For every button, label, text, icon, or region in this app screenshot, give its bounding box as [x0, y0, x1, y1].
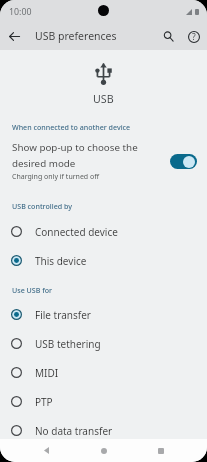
button[interactable]: No data transfer: [0, 416, 207, 445]
button[interactable]: MIDI: [0, 358, 207, 387]
staticText: 10:00: [9, 6, 32, 18]
button[interactable]: USB tethering: [0, 329, 207, 358]
staticText: Use USB for: [12, 285, 53, 295]
button[interactable]: Back: [34, 439, 58, 462]
button[interactable]: Home: [92, 439, 116, 462]
staticText: Connected device: [35, 225, 118, 239]
button[interactable]: Show pop-up to choose the desired mode: [0, 141, 207, 182]
staticText: ?: [192, 31, 196, 43]
button[interactable]: Recent apps: [149, 439, 173, 462]
staticText: PTP: [35, 395, 53, 409]
staticText: USB preferences: [35, 29, 117, 43]
staticText: File transfer: [35, 308, 91, 322]
staticText: MIDI: [35, 366, 59, 380]
staticText: USB: [93, 92, 114, 107]
button[interactable]: Help: [181, 24, 206, 49]
staticText: USB controlled by: [12, 201, 72, 211]
button[interactable]: Back: [2, 24, 27, 49]
button[interactable]: This device: [0, 246, 207, 275]
staticText: This device: [35, 254, 87, 268]
button[interactable]: PTP: [0, 387, 207, 416]
staticText: USB tethering: [35, 337, 101, 351]
staticText: Show pop-up to choose the desired mode: [12, 141, 138, 170]
button[interactable]: Search: [156, 24, 181, 49]
staticText: No data transfer: [35, 424, 113, 438]
staticText: Charging only if turned off: [12, 172, 100, 182]
button[interactable]: File transfer: [0, 300, 207, 329]
staticText: When connected to another device: [12, 122, 131, 132]
button[interactable]: Connected device: [0, 217, 207, 246]
button[interactable]: Show pop-up to choose the desired mode: [170, 154, 197, 169]
